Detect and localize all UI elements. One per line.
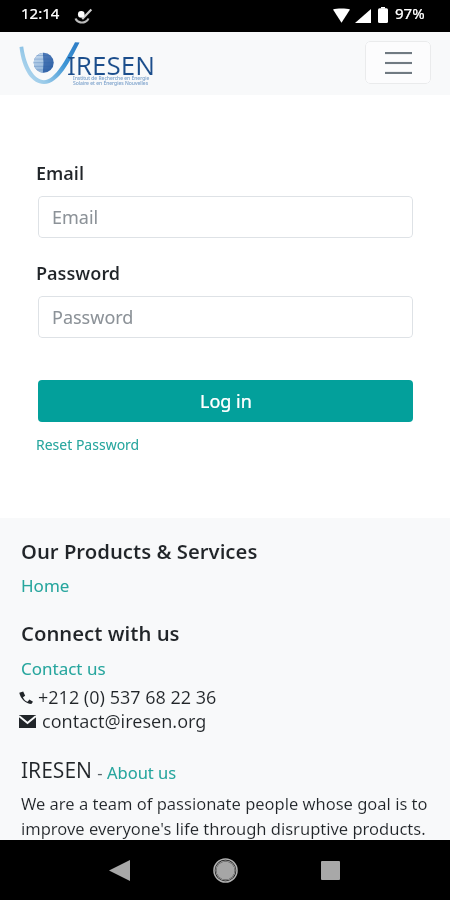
button[interactable]: Back	[95, 846, 143, 894]
staticText: 97%	[395, 3, 425, 23]
button[interactable]: Email	[38, 196, 413, 238]
button[interactable]: Recent apps	[306, 846, 354, 894]
button[interactable]: About us	[107, 763, 177, 785]
staticText: +212 (0) 537 68 22 36	[38, 685, 217, 710]
button[interactable]: Password	[38, 296, 413, 338]
staticText: contact@iresen.org	[42, 709, 207, 734]
button[interactable]: Log in	[38, 380, 413, 422]
staticText: Email	[52, 205, 99, 230]
button[interactable]: Home	[21, 574, 70, 597]
staticText: Our Products & Services	[21, 537, 258, 565]
staticText: -	[93, 761, 107, 783]
button[interactable]: Reset Password	[36, 435, 140, 454]
staticText: Contact us	[21, 657, 106, 680]
button[interactable]: Menu	[365, 41, 431, 84]
staticText: Log in	[200, 389, 252, 414]
staticText: Email	[36, 161, 85, 186]
staticText: 12:14	[21, 3, 60, 23]
staticText: Home	[21, 574, 70, 597]
staticText: IRESEN	[67, 47, 155, 82]
staticText: Reset Password	[36, 435, 140, 454]
staticText: Institut de Recherche en Énergie Solaire…	[73, 75, 150, 86]
staticText: Password	[36, 261, 121, 286]
staticText: About us	[107, 761, 177, 783]
button[interactable]: Home	[201, 846, 249, 894]
staticText: IRESEN	[21, 756, 93, 785]
staticText: We are a team of passionate people whose…	[21, 792, 441, 839]
staticText: Password	[52, 305, 134, 330]
staticText: Connect with us	[21, 619, 180, 647]
button[interactable]: Contact us	[21, 657, 106, 680]
